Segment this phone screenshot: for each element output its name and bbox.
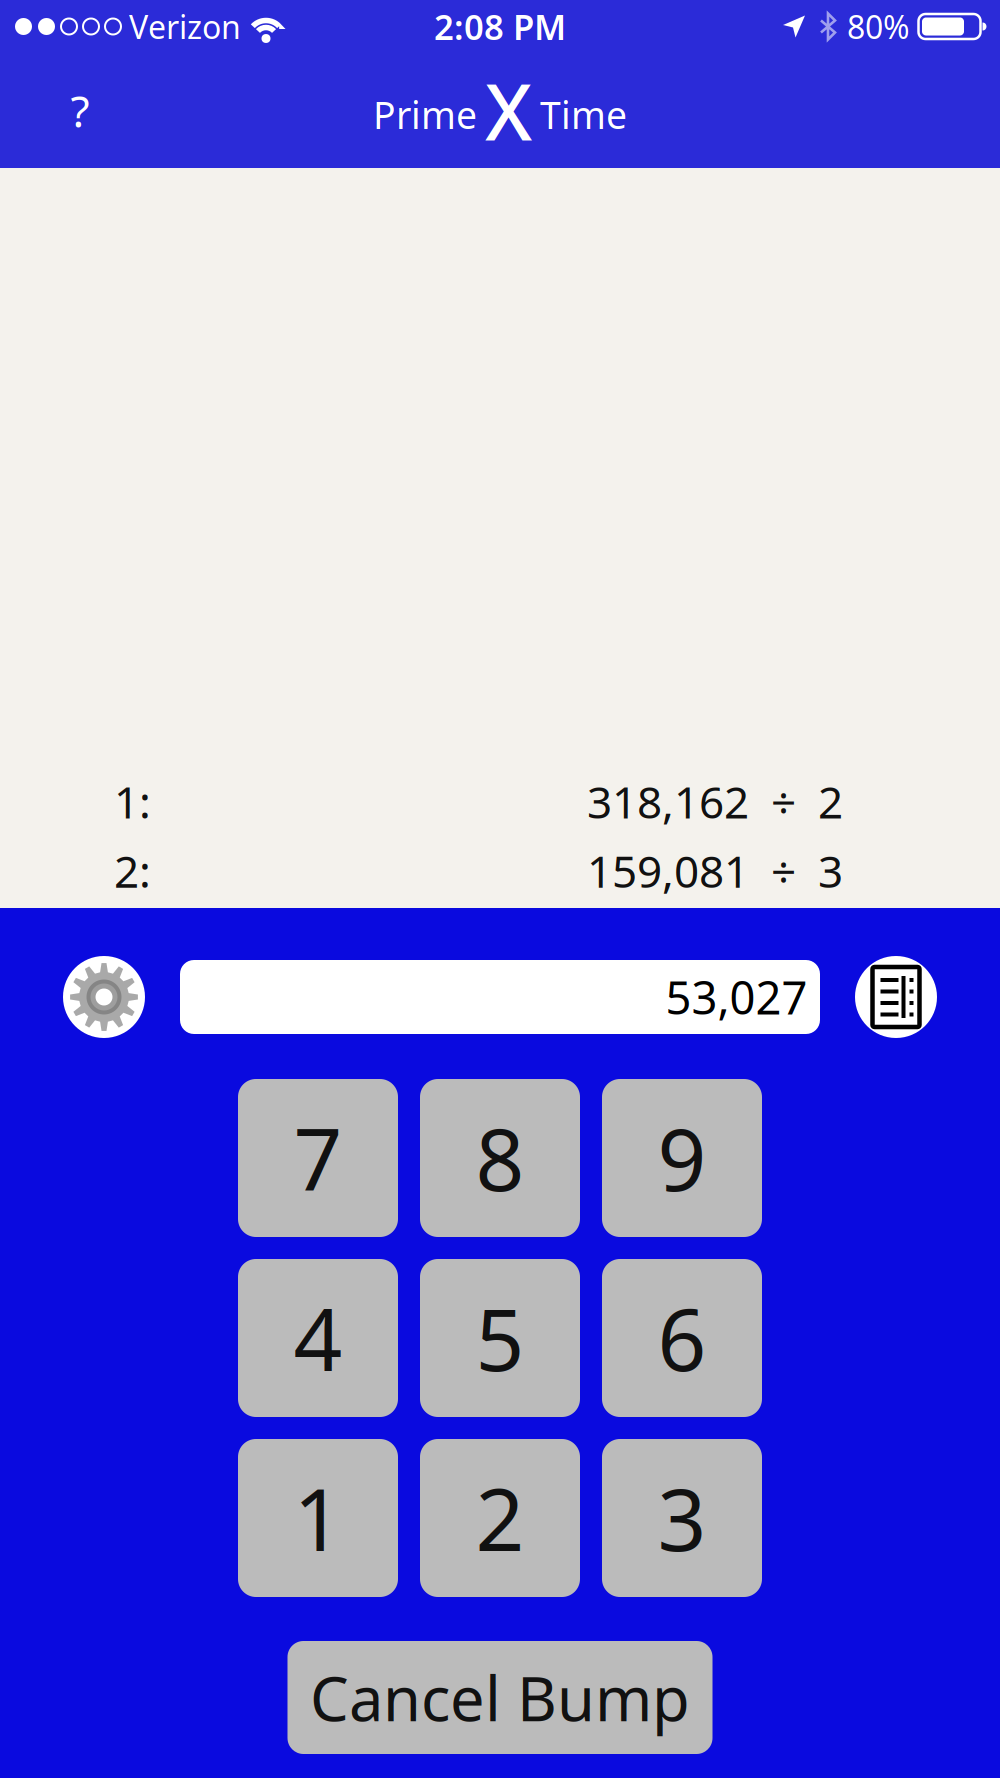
button[interactable]: Settings — [63, 956, 145, 1038]
staticText: 1: — [114, 772, 151, 830]
staticText: 2 — [475, 1461, 524, 1575]
staticText: 9 — [657, 1101, 706, 1215]
staticText: Cancel Bump — [310, 1657, 690, 1738]
staticText: 159,081 ÷ 3 — [587, 842, 843, 900]
button[interactable]: 9 — [602, 1079, 762, 1237]
staticText: ? — [70, 81, 89, 140]
button[interactable]: 2 — [420, 1439, 580, 1597]
staticText: 5 — [475, 1281, 524, 1395]
staticText: Time — [540, 90, 627, 139]
button[interactable]: Cancel Bump — [287, 1641, 712, 1754]
staticText: 318,162 ÷ 2 — [587, 772, 843, 830]
button[interactable]: Factor list — [855, 956, 937, 1038]
button[interactable]: 6 — [602, 1259, 762, 1417]
button[interactable]: 4 — [238, 1259, 398, 1417]
staticText: Verizon — [129, 5, 241, 48]
staticText: Prime — [373, 90, 477, 139]
button[interactable]: 1 — [238, 1439, 398, 1597]
staticText: 2:08 PM — [434, 3, 566, 49]
staticText: 6 — [657, 1281, 706, 1395]
button[interactable]: 5 — [420, 1259, 580, 1417]
button[interactable]: 7 — [238, 1079, 398, 1237]
staticText: 53,027 — [665, 967, 807, 1027]
staticText: 80% — [847, 5, 910, 48]
staticText: 2: — [114, 842, 151, 900]
button[interactable]: 3 — [602, 1439, 762, 1597]
button[interactable]: Number entry — [180, 960, 820, 1034]
staticText: 8 — [475, 1101, 524, 1215]
button[interactable]: Help — [40, 65, 120, 155]
staticText: 4 — [293, 1281, 342, 1395]
staticText: X — [485, 59, 532, 162]
staticText: 1 — [293, 1461, 342, 1575]
staticText: 3 — [657, 1461, 706, 1575]
staticText: 7 — [293, 1101, 342, 1215]
button[interactable]: 8 — [420, 1079, 580, 1237]
